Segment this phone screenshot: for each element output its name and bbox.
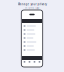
button[interactable]	[22, 32, 42, 36]
button[interactable]	[22, 44, 42, 48]
button[interactable]: Tab	[32, 60, 37, 67]
button[interactable]	[22, 40, 42, 44]
button[interactable]: Tab	[22, 60, 27, 67]
button[interactable]	[22, 24, 42, 28]
button[interactable]: Tab	[27, 60, 32, 67]
button[interactable]: Tab	[37, 60, 42, 67]
staticText: Manage your privacy	[17, 2, 46, 6]
button[interactable]	[22, 48, 42, 52]
staticText: in one tap	[24, 6, 39, 9]
button[interactable]	[22, 36, 42, 40]
button[interactable]	[22, 28, 42, 32]
